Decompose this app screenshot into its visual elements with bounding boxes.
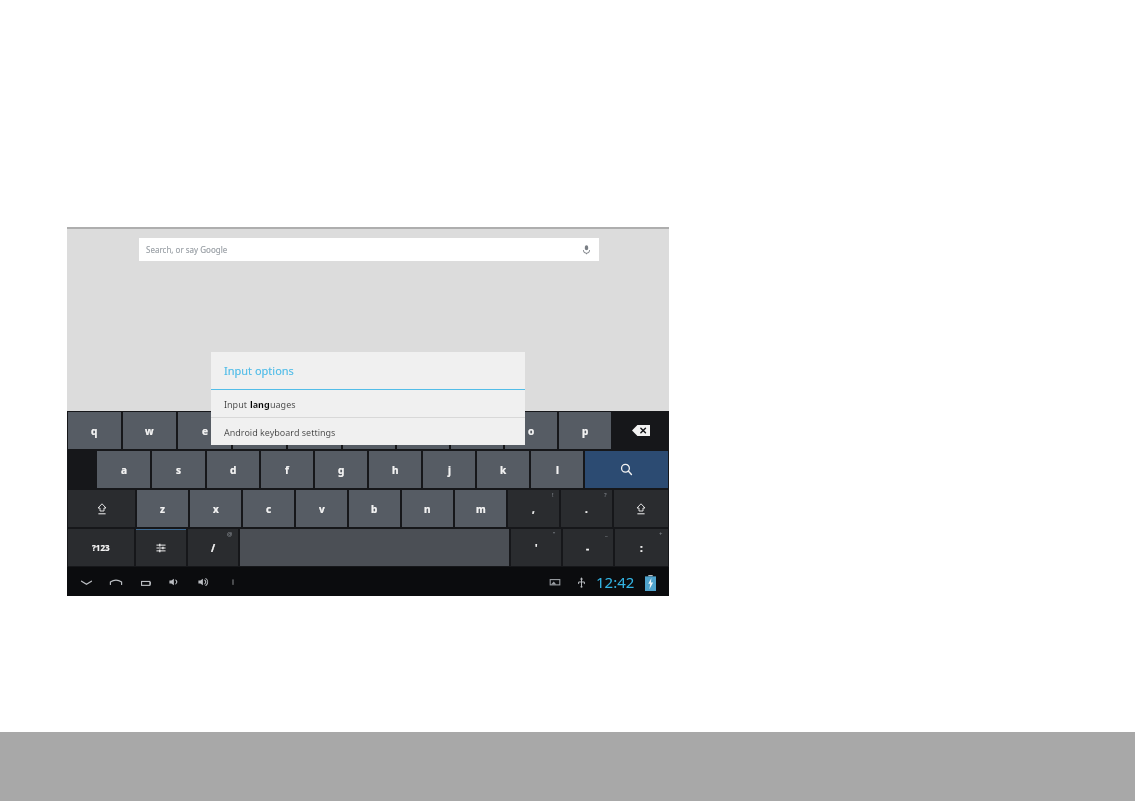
button[interactable]: s <box>152 451 205 488</box>
button[interactable]: z <box>137 490 188 527</box>
staticText: @ <box>227 530 233 538</box>
button[interactable]: n <box>402 490 453 527</box>
button[interactable]: USB connected <box>572 573 590 591</box>
button[interactable]: e <box>178 412 231 449</box>
button[interactable]: Hide keyboard <box>77 573 95 591</box>
staticText: lang <box>250 398 270 410</box>
button[interactable]: ?123 <box>68 529 134 566</box>
button[interactable]: Input options <box>136 529 186 566</box>
staticText: Input options <box>224 363 294 378</box>
staticText: d <box>230 463 237 477</box>
staticText: + <box>659 530 663 538</box>
staticText: l <box>556 463 559 477</box>
button[interactable]: Shift <box>614 490 668 527</box>
staticText: m <box>476 502 486 516</box>
staticText: x <box>213 502 219 516</box>
staticText: a <box>121 463 127 477</box>
button[interactable]: Search <box>585 451 668 488</box>
staticText: " <box>553 530 556 538</box>
button[interactable]: . <box>561 490 612 527</box>
button[interactable]: Search, or say Google <box>139 238 599 261</box>
staticText: q <box>91 424 98 438</box>
button[interactable]: Recents <box>137 573 155 591</box>
button[interactable]: : <box>615 529 668 566</box>
button[interactable]: f <box>261 451 313 488</box>
staticText: f <box>285 463 289 477</box>
button[interactable]: More options <box>224 573 242 591</box>
button[interactable]: w <box>123 412 176 449</box>
button[interactable]: h <box>369 451 421 488</box>
button[interactable]: t <box>288 412 341 449</box>
button[interactable]: g <box>315 451 367 488</box>
button[interactable]: d <box>207 451 259 488</box>
staticText: o <box>528 424 535 438</box>
button[interactable]: Android keyboard settings <box>211 418 525 445</box>
button[interactable]: k <box>477 451 529 488</box>
button[interactable]: j <box>423 451 475 488</box>
button[interactable]: - <box>563 529 613 566</box>
button[interactable]: Home <box>107 573 125 591</box>
button[interactable]: Shift <box>68 490 135 527</box>
button[interactable]: y <box>343 412 395 449</box>
staticText: w <box>145 424 154 438</box>
staticText: v <box>319 502 325 516</box>
button[interactable]: Input options <box>211 352 525 389</box>
staticText: _ <box>605 530 608 538</box>
staticText: r <box>257 424 262 438</box>
staticText: ?123 <box>92 542 110 553</box>
button[interactable]: Input <box>211 390 525 417</box>
button[interactable]: ' <box>511 529 561 566</box>
staticText: p <box>582 424 589 438</box>
staticText: : <box>640 541 643 555</box>
button[interactable]: a <box>97 451 150 488</box>
staticText: j <box>448 463 451 477</box>
button[interactable]: , <box>508 490 559 527</box>
staticText: z <box>160 502 165 516</box>
button[interactable]: m <box>455 490 506 527</box>
staticText: / <box>211 541 216 555</box>
button[interactable]: Battery charging <box>641 573 659 591</box>
button[interactable]: l <box>531 451 583 488</box>
button[interactable]: Backspace <box>613 412 668 449</box>
staticText: k <box>500 463 507 477</box>
button[interactable]: r <box>233 412 286 449</box>
button[interactable]: Screenshot <box>546 573 564 591</box>
button[interactable]: u <box>397 412 449 449</box>
button[interactable]: o <box>505 412 557 449</box>
staticText: 12:42 <box>596 572 635 592</box>
button[interactable]: Volume up <box>195 573 213 591</box>
staticText: - <box>586 541 590 555</box>
staticText: n <box>424 502 431 516</box>
staticText: t <box>312 424 317 438</box>
staticText: ? <box>604 491 607 499</box>
staticText: Android keyboard settings <box>224 426 336 438</box>
button[interactable]: b <box>349 490 400 527</box>
staticText: c <box>266 502 272 516</box>
button[interactable]: i <box>451 412 503 449</box>
staticText: ! <box>552 491 554 499</box>
button[interactable]: c <box>243 490 294 527</box>
staticText: Input <box>224 398 250 410</box>
button[interactable]: v <box>296 490 347 527</box>
staticText: , <box>532 502 535 516</box>
staticText: h <box>392 463 399 477</box>
staticText: e <box>202 424 208 438</box>
staticText: b <box>371 502 378 516</box>
staticText: uages <box>270 398 296 410</box>
button[interactable]: q <box>68 412 121 449</box>
staticText: Search, or say Google <box>146 244 228 255</box>
button[interactable]: / <box>188 529 238 566</box>
staticText: ' <box>535 541 538 555</box>
staticText: . <box>585 502 588 516</box>
button[interactable]: Volume down <box>166 573 184 591</box>
staticText: s <box>176 463 182 477</box>
button[interactable]: p <box>559 412 611 449</box>
button[interactable]: x <box>190 490 241 527</box>
staticText: g <box>338 463 345 477</box>
